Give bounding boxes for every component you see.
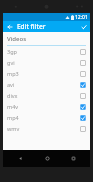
staticText: wmv bbox=[7, 125, 20, 132]
button[interactable]: avi bbox=[3, 79, 90, 90]
staticText: mp4 bbox=[7, 114, 19, 121]
staticText: avi bbox=[7, 81, 15, 88]
button[interactable]: mp4 bbox=[3, 112, 90, 123]
staticText: 3gp bbox=[7, 48, 17, 55]
button[interactable]: Recents bbox=[63, 150, 83, 167]
button[interactable]: Apply bbox=[77, 21, 90, 32]
button[interactable]: 3gp bbox=[3, 46, 90, 57]
staticText: m4v bbox=[7, 103, 19, 110]
staticText: 12:01 bbox=[75, 14, 88, 21]
staticText: mp3 bbox=[7, 70, 19, 77]
button[interactable]: Back bbox=[10, 150, 30, 167]
button[interactable]: mp3 bbox=[3, 68, 90, 79]
button[interactable]: wmv bbox=[3, 123, 90, 134]
staticText: Edit filter bbox=[17, 22, 46, 31]
button[interactable]: gvi bbox=[3, 57, 90, 68]
button[interactable]: divx bbox=[3, 90, 90, 101]
button[interactable]: m4v bbox=[3, 101, 90, 112]
staticText: Videos bbox=[7, 35, 27, 43]
staticText: gvi bbox=[7, 59, 15, 66]
button[interactable]: Back bbox=[3, 21, 17, 32]
staticText: divx bbox=[7, 92, 18, 99]
button[interactable]: Home bbox=[37, 150, 57, 167]
